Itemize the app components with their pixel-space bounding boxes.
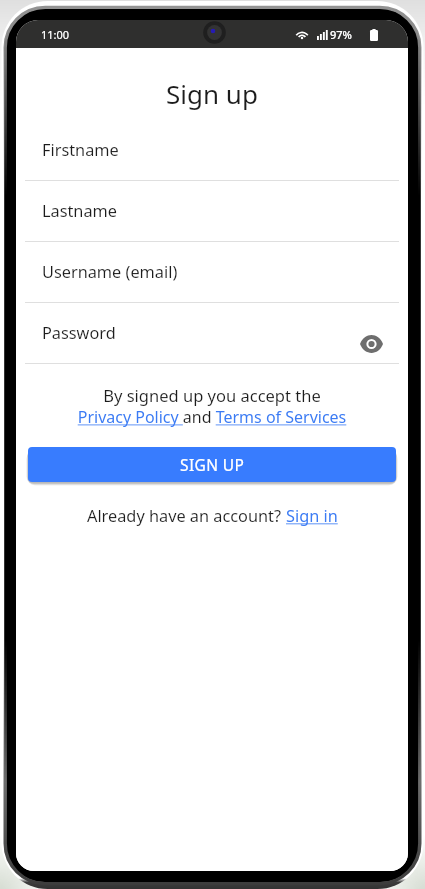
staticText: Password xyxy=(42,322,116,344)
staticText: Sign up xyxy=(16,76,408,111)
button[interactable]: Sign in xyxy=(286,505,338,527)
staticText: 97% xyxy=(330,27,352,42)
button[interactable]: Privacy Policy and Terms of Services xyxy=(16,406,408,428)
staticText: Username (email) xyxy=(42,261,178,283)
staticText: Firstname xyxy=(42,139,119,161)
button[interactable]: Show password xyxy=(356,329,386,359)
staticText: Lastname xyxy=(42,200,118,222)
staticText: SIGN UP xyxy=(180,454,245,475)
button[interactable]: SIGN UP xyxy=(28,447,396,482)
staticText: By signed up you accept the xyxy=(16,384,408,406)
staticText: Already have an account? xyxy=(87,505,286,527)
staticText: 11:00 xyxy=(41,27,70,42)
